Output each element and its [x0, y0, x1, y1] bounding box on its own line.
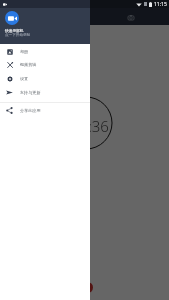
button[interactable]: 支持与更新: [0, 85, 90, 99]
staticText: 视频剪辑: [20, 62, 37, 67]
button[interactable]: 相册: [0, 44, 90, 58]
button[interactable]: Record: [82, 282, 93, 293]
staticText: 00:36: [71, 116, 109, 136]
button[interactable]: 分享此应用: [0, 103, 90, 117]
staticText: 支持与更新: [20, 90, 41, 95]
staticText: 设置: [20, 76, 29, 81]
staticText: 分享此应用: [20, 108, 41, 113]
button[interactable]: Camera: [125, 11, 137, 23]
staticText: 11:15: [154, 1, 167, 8]
button[interactable]: 视频剪辑: [0, 57, 90, 71]
staticText: 相册: [20, 49, 29, 54]
staticText: 快速录屏机: [5, 28, 24, 33]
staticText: 点一下开始录制: [5, 33, 31, 38]
button[interactable]: 设置: [0, 71, 90, 85]
